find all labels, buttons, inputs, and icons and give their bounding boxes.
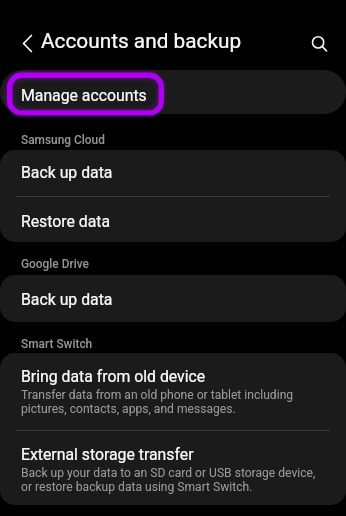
staticText: External storage transfer (21, 445, 194, 464)
staticText: Bring data from old device (21, 367, 206, 386)
staticText: Google Drive (21, 257, 89, 271)
staticText: Accounts and backup (41, 29, 242, 53)
button[interactable]: Search (303, 27, 335, 59)
button[interactable]: Back up data (0, 150, 346, 196)
staticText: Smart Switch (21, 337, 93, 351)
button[interactable]: Back up data (0, 275, 346, 322)
button[interactable]: Navigate up (9, 27, 41, 59)
button[interactable]: Manage accounts (0, 70, 346, 114)
staticText: Back up your data to an SD card or USB s… (21, 466, 316, 493)
staticText: Back up data (21, 290, 113, 309)
staticText: Manage accounts (21, 86, 147, 105)
button[interactable]: Restore data (0, 197, 346, 242)
button[interactable]: External storage transfer (0, 431, 346, 505)
staticText: Back up data (21, 163, 113, 182)
staticText: Samsung Cloud (21, 133, 105, 147)
staticText: Restore data (21, 212, 111, 231)
staticText: Transfer data from an old phone or table… (21, 388, 294, 415)
button[interactable]: Bring data from old device (0, 353, 346, 430)
